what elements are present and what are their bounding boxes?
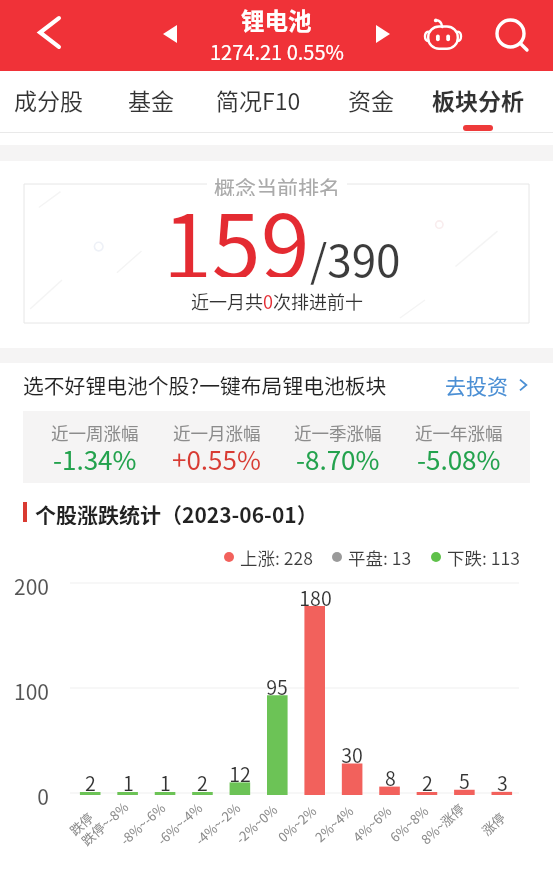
staticText: 跌停~-8% xyxy=(77,797,132,850)
staticText: 个股涨跌统计（2023-06-01） xyxy=(35,499,318,525)
staticText: 近一月涨幅 xyxy=(173,420,261,445)
staticText: 概念当前排名 xyxy=(214,172,340,196)
button[interactable]: 选不好锂电池个股?一键布局锂电池板块 xyxy=(0,357,553,413)
staticText: -6%~-4% xyxy=(153,798,206,849)
staticText: 跌停 xyxy=(65,807,98,840)
staticText: 8%~涨停 xyxy=(416,799,468,848)
staticText: 去投资 xyxy=(445,370,508,400)
staticText: 1 xyxy=(160,768,171,793)
staticText: 板块分析 xyxy=(432,83,524,116)
staticText: -5.08% xyxy=(417,440,501,478)
button[interactable]: 成分股 xyxy=(0,71,103,132)
staticText: 6%~8% xyxy=(386,801,432,846)
staticText: 资金 xyxy=(348,83,394,116)
button[interactable]: AI assistant xyxy=(418,9,468,59)
staticText: 下跌: 113 xyxy=(447,545,520,569)
staticText: 选不好锂电池个股?一键布局锂电池板块 xyxy=(23,370,387,400)
staticText: 8 xyxy=(385,763,396,788)
staticText: -8%~-6% xyxy=(116,798,169,849)
staticText: 100 xyxy=(0,676,49,706)
staticText: -4%~-2% xyxy=(191,798,244,849)
staticText: 2%~4% xyxy=(311,801,357,846)
staticText: 2 xyxy=(197,768,208,793)
staticText: 0 xyxy=(0,781,49,811)
button[interactable]: Back xyxy=(20,3,78,61)
staticText: 1 xyxy=(123,768,134,793)
staticText: -1.34% xyxy=(53,440,137,478)
staticText: 5 xyxy=(459,766,470,791)
staticText: 近一季涨幅 xyxy=(294,420,382,445)
staticText: 近一周涨幅 xyxy=(51,420,139,445)
staticText: 基金 xyxy=(128,83,174,116)
staticText: 次排进前十 xyxy=(273,288,363,314)
staticText: 2 xyxy=(85,768,96,793)
button[interactable]: 资金 xyxy=(316,71,426,132)
button[interactable]: 基金 xyxy=(96,71,206,132)
staticText: 0%~2% xyxy=(274,801,320,846)
staticText: -2%~0% xyxy=(231,799,282,848)
staticText: /390 xyxy=(310,226,401,290)
staticText: +0.55% xyxy=(172,440,261,478)
staticText: 简况F10 xyxy=(216,83,301,116)
staticText: -8.70% xyxy=(296,440,380,478)
staticText: 159 xyxy=(163,177,310,277)
button[interactable]: 板块分析 xyxy=(423,71,533,132)
button[interactable]: Next sector xyxy=(361,12,405,56)
staticText: 近一月共 xyxy=(191,288,263,314)
staticText: 12 xyxy=(229,759,251,784)
staticText: 1274.21 0.55% xyxy=(210,37,344,66)
button[interactable]: Search xyxy=(487,10,539,62)
staticText: 30 xyxy=(341,740,363,765)
staticText: 3 xyxy=(497,768,508,793)
staticText: 95 xyxy=(266,672,288,697)
button[interactable]: 简况F10 xyxy=(203,71,313,132)
staticText: 锂电池 xyxy=(241,3,312,37)
staticText: 近一年涨幅 xyxy=(415,420,503,445)
staticText: 涨停 xyxy=(477,807,510,840)
staticText: 200 xyxy=(0,571,49,601)
staticText: 上涨: 228 xyxy=(240,545,313,569)
staticText: 平盘: 13 xyxy=(348,545,412,569)
staticText: 4%~6% xyxy=(349,801,395,846)
staticText: 180 xyxy=(299,583,332,608)
staticText: 0 xyxy=(263,288,273,314)
button[interactable]: Previous sector xyxy=(148,12,192,56)
staticText: 成分股 xyxy=(14,83,83,116)
staticText: 2 xyxy=(422,768,433,793)
